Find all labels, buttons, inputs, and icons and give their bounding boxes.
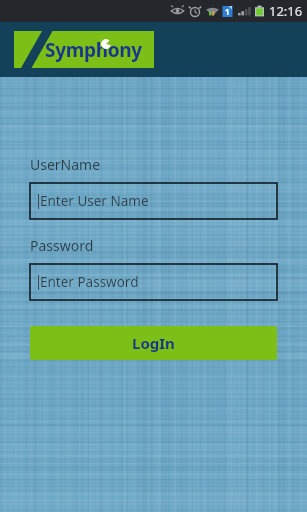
staticText: 12:16 — [269, 2, 303, 20]
staticText: Enter User Name — [40, 192, 149, 210]
button[interactable]: Enter Password — [30, 264, 277, 300]
staticText: UserName — [30, 155, 101, 174]
staticText: Password — [30, 236, 94, 255]
staticText: 1 — [225, 6, 230, 17]
staticText: Symphony — [45, 37, 142, 63]
button[interactable]: Enter User Name — [30, 183, 277, 219]
button[interactable]: LogIn — [30, 326, 277, 360]
staticText: Enter Password — [40, 273, 139, 291]
button[interactable]: Symphony logo — [14, 31, 154, 68]
staticText: LogIn — [132, 333, 175, 353]
